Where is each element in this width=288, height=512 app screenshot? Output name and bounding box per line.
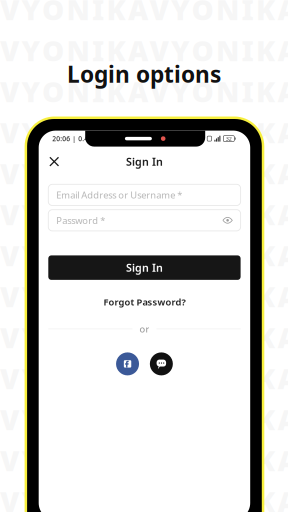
staticText: or (139, 323, 149, 335)
staticText: Login options (67, 59, 221, 89)
button[interactable]: Forgot Password? (95, 294, 193, 310)
staticText: VYONIKAVYONIKAVYONIKA (0, 360, 288, 397)
staticText: 20:06 | 0.4K/s (52, 134, 98, 143)
staticText: VYONIKAVYONIKAVYONIKA (0, 155, 288, 192)
staticText: VYONIKAVYONIKAVYONIKA (0, 0, 288, 28)
staticText: VYONIKAVYONIKAVYONIKA (0, 483, 288, 512)
staticText: VYONIKAVYONIKAVYONIKA (0, 442, 288, 479)
staticText: Sign In (126, 154, 163, 169)
staticText: VYONIKAVYONIKAVYONIKA (0, 196, 288, 233)
staticText: VYONIKAVYONIKAVYONIKA (0, 237, 288, 274)
staticText: VYONIKAVYONIKAVYONIKA (0, 401, 288, 438)
staticText: VYONIKAVYONIKAVYONIKA (0, 278, 288, 315)
staticText: Password * (56, 214, 105, 226)
button[interactable]: Continue with chat (150, 352, 173, 375)
staticText: VYONIKAVYONIKAVYONIKA (0, 319, 288, 356)
staticText: Sign In (126, 261, 163, 275)
staticText: VYONIKAVYONIKAVYONIKA (0, 73, 288, 110)
staticText: 32 (226, 135, 232, 142)
staticText: VYONIKAVYONIKAVYONIKA (0, 114, 288, 151)
staticText: Email Address or Username * (56, 189, 182, 201)
button[interactable]: Sign In (48, 255, 241, 280)
staticText: Forgot Password? (103, 296, 185, 308)
staticText: VYONIKAVYONIKAVYONIKA (0, 32, 288, 69)
button[interactable]: Close (44, 151, 64, 173)
button[interactable]: Continue with Facebook (116, 352, 139, 375)
